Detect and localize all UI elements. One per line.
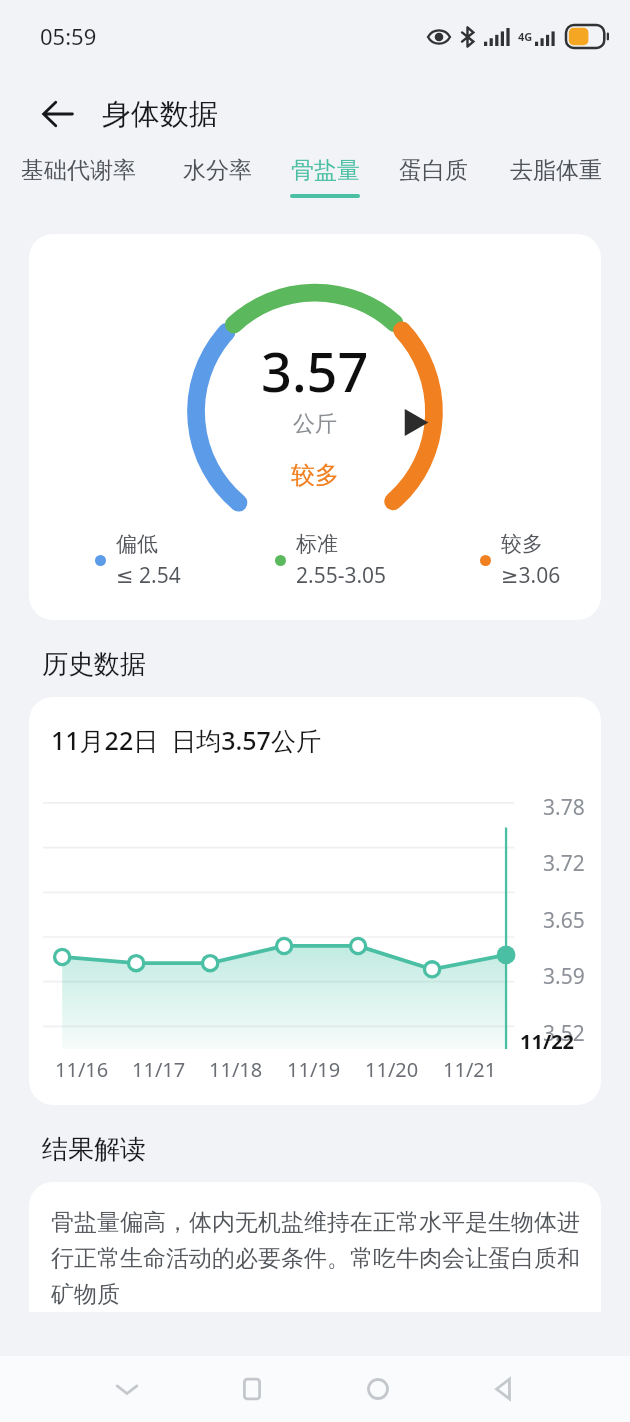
button[interactable]: 蛋白质 <box>379 156 487 222</box>
staticText: 骨盐量 <box>291 156 360 185</box>
staticText: 较多 <box>501 531 543 557</box>
staticText: 11/19 <box>287 1056 341 1083</box>
staticText: 3.59 <box>543 962 585 991</box>
staticText: 05:59 <box>40 21 97 51</box>
button[interactable]: 11月22日 日均3.57公斤 <box>29 697 601 1105</box>
button[interactable]: 骨盐量偏高，体内无机盐维持在正常水平是生物体进行正常生命活动的必要条件。常吃牛肉… <box>29 1182 601 1312</box>
staticText: 11/18 <box>209 1056 263 1083</box>
staticText: 3.57 <box>261 334 369 408</box>
staticText: 11/22 <box>520 1028 575 1055</box>
staticText: 公斤 <box>293 410 337 438</box>
staticText: 较多 <box>291 460 339 490</box>
staticText: 3.52 <box>543 1019 585 1048</box>
staticText: 蛋白质 <box>399 156 468 185</box>
staticText: 去脂体重 <box>510 156 602 185</box>
staticText: 2.55-3.05 <box>296 561 387 590</box>
staticText: 4G <box>518 29 533 44</box>
button[interactable]: Back <box>32 88 84 140</box>
button[interactable]: 骨盐量 <box>271 156 379 222</box>
staticText: 11/21 <box>443 1056 497 1083</box>
button[interactable]: 3.57 <box>29 234 601 620</box>
staticText: 标准 <box>296 531 338 557</box>
staticText: 历史数据 <box>42 648 146 681</box>
staticText: 11/16 <box>55 1056 109 1083</box>
button[interactable]: 水分率 <box>163 156 271 222</box>
staticText: 基础代谢率 <box>21 156 136 185</box>
staticText: 11/17 <box>132 1056 186 1083</box>
button[interactable]: Back <box>474 1360 532 1418</box>
button[interactable]: Hide keyboard <box>98 1360 156 1418</box>
staticText: 偏低 <box>116 531 158 557</box>
button[interactable]: Home <box>349 1360 407 1418</box>
staticText: 3.78 <box>543 793 585 822</box>
staticText: 3.65 <box>543 906 585 935</box>
button[interactable]: Recent apps <box>223 1360 281 1418</box>
staticText: ≤ 2.54 <box>116 561 181 590</box>
staticText: 水分率 <box>183 156 252 185</box>
staticText: 11月22日 日均3.57公斤 <box>51 723 321 757</box>
staticText: 身体数据 <box>102 96 218 133</box>
staticText: 结果解读 <box>42 1133 146 1166</box>
staticText: 11/20 <box>365 1056 419 1083</box>
button[interactable]: 去脂体重 <box>487 156 624 222</box>
staticText: ≥3.06 <box>501 561 561 590</box>
button[interactable]: 基础代谢率 <box>0 156 163 222</box>
staticText: 骨盐量偏高，体内无机盐维持在正常水平是生物体进行正常生命活动的必要条件。常吃牛肉… <box>51 1208 583 1309</box>
staticText: 3.72 <box>543 849 585 878</box>
